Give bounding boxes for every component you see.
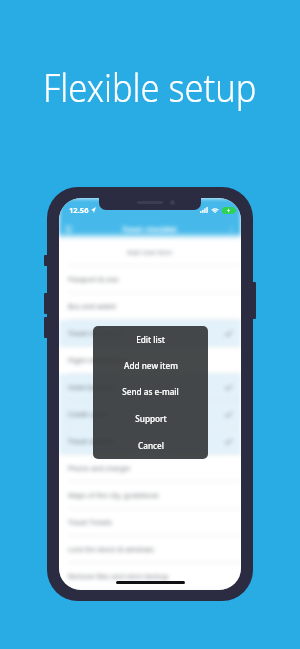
staticText: Maps of the city, guidebook	[68, 491, 159, 501]
staticText: Travel insurance	[68, 329, 122, 339]
button[interactable]: Add new item	[93, 352, 208, 378]
staticText: Credit cards	[68, 410, 108, 420]
staticText: Travel checklist	[122, 224, 177, 234]
staticText: Passport & visa	[68, 275, 119, 285]
staticText: Add new item	[127, 248, 173, 258]
button[interactable]: Edit list	[93, 326, 208, 352]
staticText: Remove files and store backup	[68, 572, 169, 582]
button[interactable]: Passport & visa	[59, 266, 241, 293]
button[interactable]: Send as e-mail	[93, 378, 208, 405]
staticText: Bus and wallet	[68, 302, 116, 312]
button[interactable]: Add new item	[59, 239, 241, 266]
button[interactable]: Bus and wallet	[59, 293, 241, 320]
staticText: Lock the doors & windows	[68, 545, 155, 555]
staticText: Travel adapter	[68, 437, 116, 447]
staticText: Support	[135, 413, 167, 424]
button[interactable]: Travel insurance	[59, 320, 241, 347]
staticText: Hotel booking	[68, 383, 115, 393]
button[interactable]: Support	[93, 405, 208, 432]
staticText: Travel Tickets	[68, 518, 112, 528]
button[interactable]: Travel adapter	[59, 428, 241, 455]
button[interactable]: Maps of the city, guidebook	[59, 482, 241, 509]
button[interactable]: Hotel booking	[59, 374, 241, 401]
button[interactable]: Cancel	[93, 432, 208, 459]
staticText: Cancel	[138, 440, 164, 451]
button[interactable]: Travel Tickets	[59, 509, 241, 536]
staticText: Add new item	[124, 360, 178, 371]
staticText: 12.56	[69, 205, 89, 215]
staticText: Send as e-mail	[122, 386, 179, 397]
staticText: Flexible setup	[43, 61, 257, 113]
staticText: Flight information	[68, 356, 128, 366]
button[interactable]: Phone and charger	[59, 455, 241, 482]
button[interactable]: Flight information	[59, 347, 241, 374]
button[interactable]: Edit list	[93, 326, 208, 459]
button[interactable]: Credit cards	[59, 401, 241, 428]
staticText: Edit list	[136, 334, 165, 345]
button[interactable]: Lock the doors & windows	[59, 536, 241, 563]
staticText: Phone and charger	[68, 464, 131, 474]
button[interactable]: Remove files and store backup	[59, 563, 241, 590]
